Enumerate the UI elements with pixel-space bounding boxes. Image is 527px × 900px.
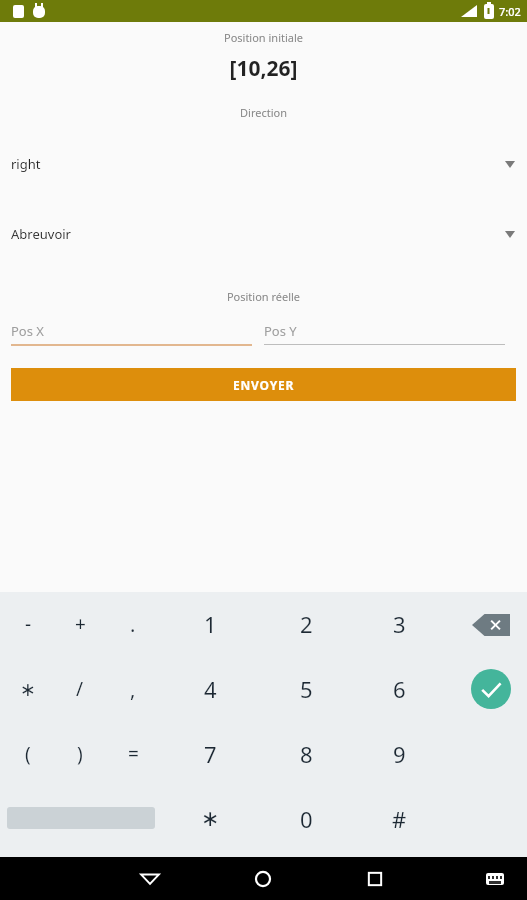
- staticText: 6: [393, 674, 406, 704]
- button[interactable]: =: [109, 732, 157, 776]
- button[interactable]: #: [375, 797, 423, 841]
- staticText: (: [25, 741, 31, 767]
- button[interactable]: 7: [186, 732, 234, 776]
- staticText: 1: [204, 609, 217, 639]
- button[interactable]: right: [0, 151, 527, 177]
- staticText: ∗: [20, 678, 36, 700]
- staticText: /: [76, 676, 84, 702]
- staticText: ,: [130, 676, 136, 703]
- button[interactable]: ): [56, 732, 104, 776]
- button[interactable]: Pos Y: [264, 322, 505, 345]
- staticText: 4: [204, 674, 217, 704]
- staticText: #: [392, 804, 407, 834]
- button[interactable]: +: [56, 602, 104, 646]
- staticText: 8: [300, 739, 313, 769]
- button[interactable]: ,: [109, 667, 157, 711]
- button[interactable]: 5: [282, 667, 330, 711]
- staticText: 2: [300, 609, 313, 639]
- button[interactable]: 2: [282, 602, 330, 646]
- button[interactable]: ∗: [4, 667, 52, 711]
- button[interactable]: 0: [282, 797, 330, 841]
- button[interactable]: 6: [375, 667, 423, 711]
- staticText: 0: [300, 804, 313, 834]
- staticText: 7: [204, 739, 217, 769]
- button[interactable]: Switch keyboard: [480, 870, 510, 888]
- staticText: ∗: [201, 806, 220, 832]
- button[interactable]: ENVOYER: [11, 368, 516, 401]
- staticText: 9: [393, 739, 406, 769]
- staticText: -: [25, 611, 32, 637]
- button[interactable]: 3: [375, 602, 423, 646]
- button[interactable]: 9: [375, 732, 423, 776]
- button[interactable]: 8: [282, 732, 330, 776]
- button[interactable]: Backspace: [472, 614, 510, 636]
- staticText: right: [11, 155, 41, 173]
- staticText: ENVOYER: [233, 377, 295, 393]
- staticText: Pos Y: [264, 322, 297, 340]
- button[interactable]: .: [109, 602, 157, 646]
- button[interactable]: Enter: [471, 669, 511, 709]
- staticText: Pos X: [11, 322, 44, 340]
- staticText: =: [128, 741, 139, 767]
- staticText: ): [77, 741, 83, 767]
- staticText: .: [130, 611, 136, 638]
- staticText: 5: [300, 674, 313, 704]
- button[interactable]: Recents: [355, 868, 395, 890]
- button[interactable]: Abreuvoir: [0, 221, 527, 247]
- button[interactable]: 1: [186, 602, 234, 646]
- button[interactable]: 4: [186, 667, 234, 711]
- button[interactable]: Home: [243, 868, 283, 890]
- button[interactable]: (: [4, 732, 52, 776]
- staticText: 3: [393, 609, 406, 639]
- button[interactable]: -: [4, 602, 52, 646]
- staticText: [10,26]: [0, 54, 527, 83]
- staticText: Position initiale: [0, 30, 527, 45]
- button[interactable]: Pos X: [11, 322, 252, 346]
- staticText: Abreuvoir: [11, 225, 71, 243]
- staticText: Direction: [0, 105, 527, 120]
- staticText: Position réelle: [0, 289, 527, 304]
- staticText: 7:02: [499, 4, 521, 19]
- button[interactable]: ∗: [186, 797, 234, 841]
- staticText: +: [75, 611, 86, 637]
- button[interactable]: Back: [130, 868, 170, 890]
- button[interactable]: /: [56, 667, 104, 711]
